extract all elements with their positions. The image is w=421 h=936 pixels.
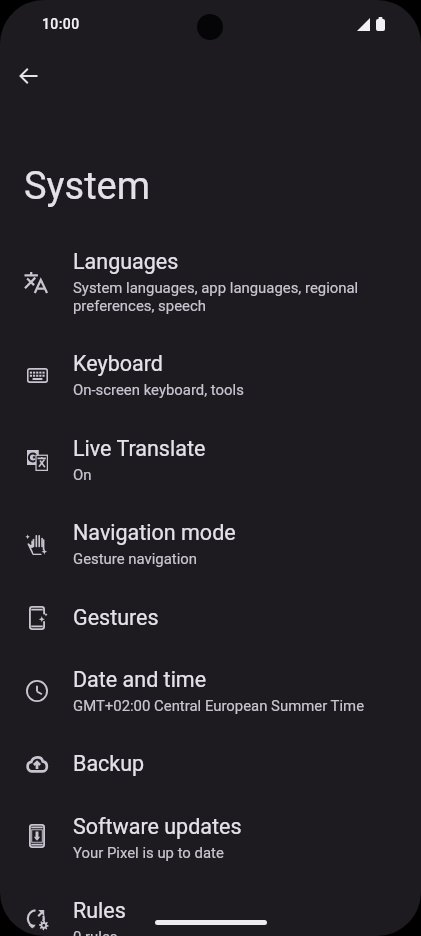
staticText: Software updates <box>73 814 242 839</box>
staticText: System <box>24 164 151 209</box>
button[interactable]: Gestures <box>0 594 421 656</box>
button[interactable]: Navigation mode <box>0 509 421 594</box>
staticText: Keyboard <box>73 351 163 376</box>
button[interactable]: Keyboard <box>0 340 421 425</box>
staticText: Languages <box>73 249 179 274</box>
button[interactable]: Backup <box>0 740 421 802</box>
staticText: Gestures <box>73 605 159 630</box>
button[interactable]: Back <box>5 52 53 100</box>
staticText: 10:00 <box>42 16 80 32</box>
button[interactable]: Live Translate <box>0 425 421 510</box>
staticText: Your Pixel is up to date <box>73 844 224 861</box>
staticText: 0 rules <box>73 928 118 936</box>
button[interactable]: Languages <box>0 238 421 341</box>
staticText: System languages, app languages, regiona… <box>73 279 397 315</box>
staticText: GMT+02:00 Central European Summer Time <box>73 697 365 714</box>
staticText: On <box>73 466 92 483</box>
staticText: Navigation mode <box>73 520 236 545</box>
staticText: Live Translate <box>73 436 206 461</box>
button[interactable]: Rules <box>0 887 421 936</box>
button[interactable]: Software updates <box>0 803 421 888</box>
staticText: Rules <box>73 898 126 923</box>
staticText: On-screen keyboard, tools <box>73 381 244 398</box>
button[interactable]: Date and time <box>0 656 421 741</box>
staticText: Gesture navigation <box>73 550 198 567</box>
staticText: Date and time <box>73 667 207 692</box>
staticText: Backup <box>73 751 145 776</box>
